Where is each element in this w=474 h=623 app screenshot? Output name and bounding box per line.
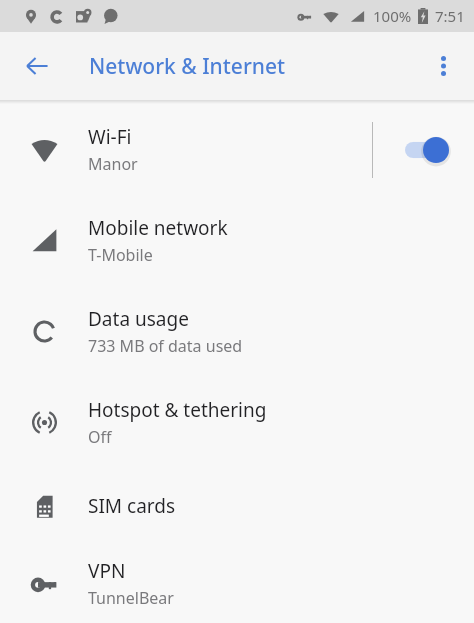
staticText: Mobile network <box>88 215 228 241</box>
staticText: Network & Internet <box>89 52 286 81</box>
staticText: 100% <box>373 6 412 26</box>
staticText: Wi-Fi <box>88 124 132 150</box>
staticText: SIM cards <box>88 493 176 519</box>
staticText: TunnelBear <box>88 587 174 609</box>
staticText: VPN <box>88 558 126 584</box>
button[interactable]: SIM cards <box>0 468 474 544</box>
button[interactable]: Mobile network <box>0 195 474 286</box>
staticText: Manor <box>88 153 138 175</box>
staticText: Hotspot & tethering <box>88 397 267 423</box>
button[interactable]: More options <box>421 44 465 88</box>
button[interactable]: Wi-Fi <box>0 104 474 195</box>
button[interactable]: Navigate up <box>14 43 60 89</box>
button[interactable]: Wi-Fi on <box>398 128 460 172</box>
staticText: Data usage <box>88 306 189 332</box>
button[interactable]: Hotspot & tethering <box>0 377 474 468</box>
staticText: T-Mobile <box>88 244 153 266</box>
staticText: 7:51 <box>435 6 465 26</box>
staticText: Off <box>88 426 112 448</box>
staticText: 733 MB of data used <box>88 335 243 357</box>
button[interactable]: Data usage <box>0 286 474 377</box>
button[interactable]: VPN <box>0 544 474 623</box>
